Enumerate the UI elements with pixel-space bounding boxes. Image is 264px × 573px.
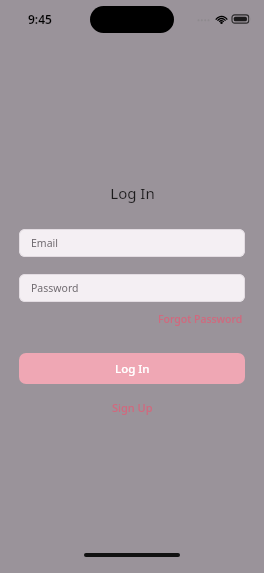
button[interactable]: Log In [19, 353, 245, 384]
staticText: Email [31, 236, 58, 250]
staticText: Sign Up [112, 400, 153, 415]
button[interactable]: Forgot Password [156, 311, 245, 327]
staticText: Log In [110, 183, 155, 203]
button[interactable]: Password [19, 274, 245, 302]
staticText: Password [31, 281, 79, 295]
button[interactable]: Email [19, 229, 245, 257]
staticText: 9:45 [28, 11, 52, 27]
staticText: Forgot Password [158, 312, 243, 326]
staticText: Log In [115, 361, 150, 377]
button[interactable]: Sign Up [108, 398, 157, 417]
